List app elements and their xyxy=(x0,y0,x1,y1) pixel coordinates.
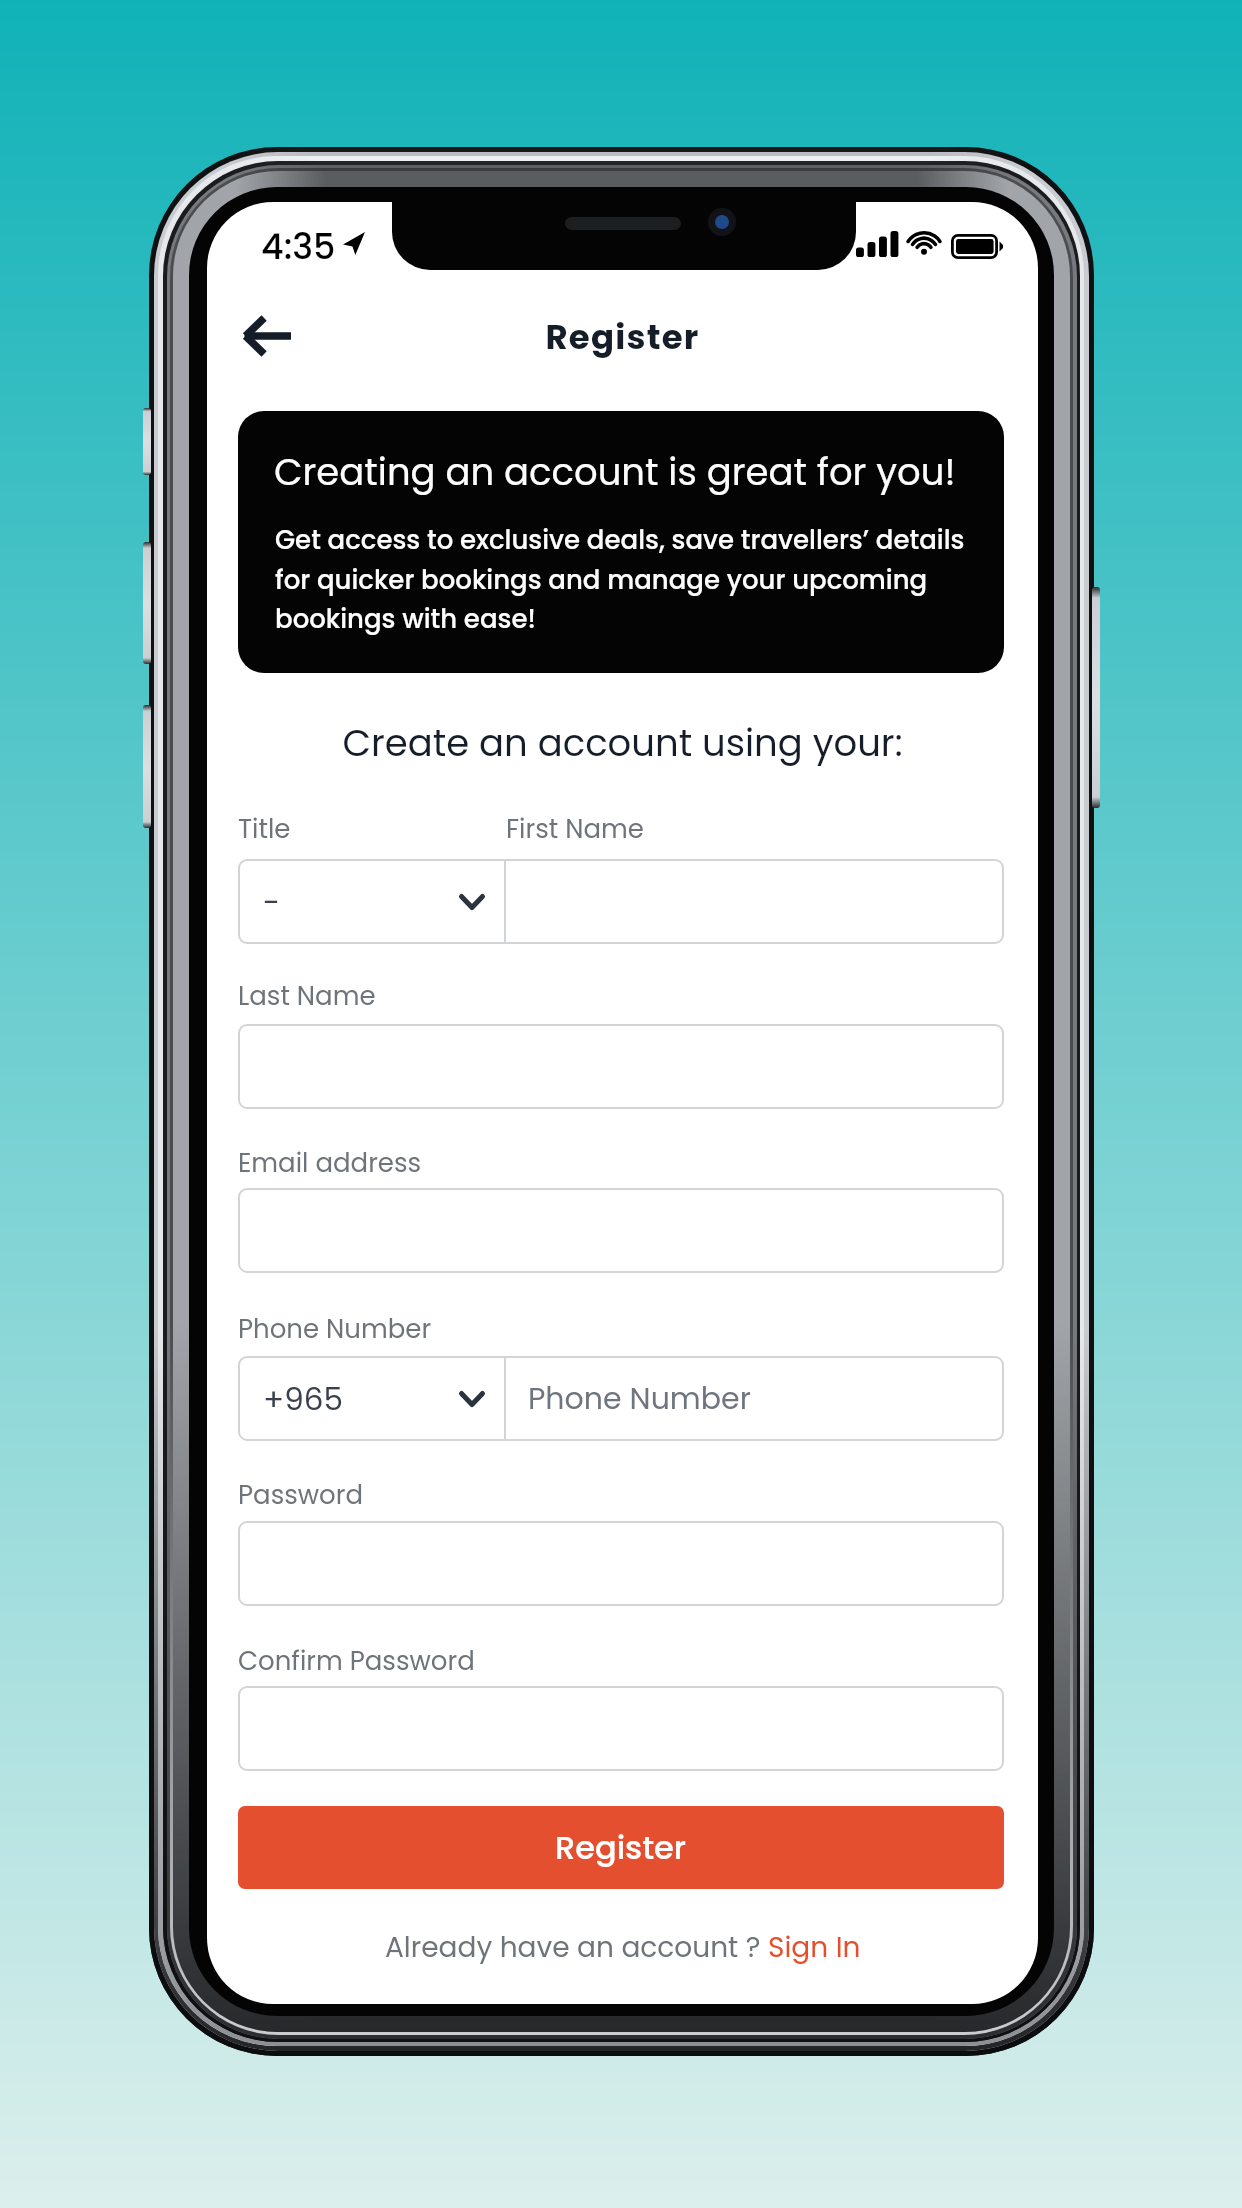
staticText: Password xyxy=(238,1477,364,1513)
button[interactable]: Back xyxy=(231,305,303,367)
staticText: Register xyxy=(555,1825,687,1870)
button[interactable] xyxy=(238,1686,1004,1771)
staticText: Register xyxy=(207,313,1038,361)
staticText: Last Name xyxy=(238,978,376,1014)
staticText: +965 xyxy=(263,1377,343,1420)
button[interactable]: Phone Number xyxy=(506,1356,1004,1441)
staticText: Get access to exclusive deals, save trav… xyxy=(275,522,969,637)
staticText: Confirm Password xyxy=(238,1643,475,1679)
button[interactable] xyxy=(238,1521,1004,1606)
staticText: Phone Number xyxy=(238,1311,432,1347)
staticText: 4:35 xyxy=(261,222,336,271)
button[interactable]: Select title xyxy=(238,859,504,944)
staticText: First Name xyxy=(506,811,644,847)
staticText: Create an account using your: xyxy=(207,717,1038,769)
button[interactable]: Select country code xyxy=(238,1356,504,1441)
staticText: Title xyxy=(238,811,291,847)
button[interactable] xyxy=(238,1024,1004,1109)
button[interactable]: Register xyxy=(238,1806,1004,1889)
button[interactable] xyxy=(506,859,1004,944)
staticText: Phone Number xyxy=(528,1378,751,1420)
staticText: - xyxy=(263,880,281,923)
staticText: Already have an account ? xyxy=(385,1928,768,1967)
button[interactable] xyxy=(238,1188,1004,1273)
staticText: Email address xyxy=(238,1145,422,1181)
button[interactable]: Sign In xyxy=(768,1928,861,1967)
staticText: Creating an account is great for you! xyxy=(274,446,956,498)
